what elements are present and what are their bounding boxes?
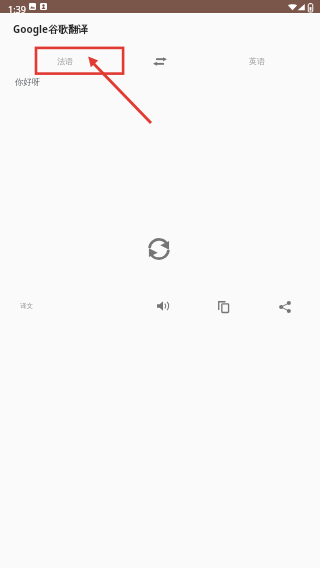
button[interactable]: Copy: [212, 295, 236, 319]
staticText: 译文: [20, 302, 33, 310]
button[interactable]: Swap languages: [129, 47, 194, 75]
button[interactable]: 译文: [11, 297, 41, 315]
button[interactable]: Listen: [151, 294, 175, 318]
staticText: 你好呀: [15, 77, 41, 88]
button[interactable]: 英语: [194, 47, 320, 75]
staticText: 1:39: [8, 3, 26, 15]
staticText: 法语: [57, 56, 73, 66]
button[interactable]: Share: [273, 295, 297, 319]
staticText: 英语: [249, 56, 265, 66]
button[interactable]: Translating: [148, 238, 170, 260]
button[interactable]: 法语: [0, 47, 129, 75]
staticText: Google谷歌翻译: [13, 22, 89, 36]
